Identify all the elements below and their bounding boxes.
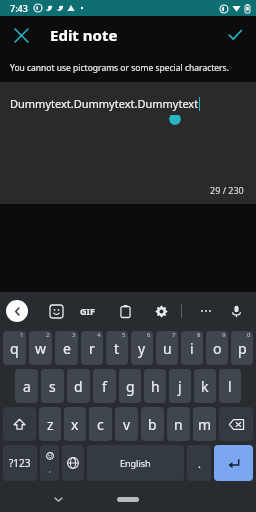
- button[interactable]: i: [181, 331, 203, 365]
- staticText: Dummytext.Dummytext.Dummytext: [10, 96, 199, 111]
- button[interactable]: k: [194, 369, 216, 403]
- button[interactable]: c: [89, 407, 112, 441]
- button[interactable]: y: [131, 331, 153, 365]
- button[interactable]: n: [167, 407, 190, 441]
- button[interactable]: Settings: [149, 299, 173, 323]
- staticText: l: [228, 377, 232, 396]
- button[interactable]: Hide keyboard: [48, 489, 68, 509]
- button[interactable]: q: [3, 331, 26, 365]
- staticText: 2: [46, 331, 50, 339]
- button[interactable]: r: [81, 331, 103, 365]
- button[interactable]: g: [119, 369, 141, 403]
- staticText: q: [10, 339, 19, 358]
- staticText: i: [190, 339, 194, 358]
- staticText: You cannot use pictograms or some specia…: [10, 62, 246, 74]
- button[interactable]: t: [106, 331, 128, 365]
- button[interactable]: Change language: [62, 445, 84, 481]
- button[interactable]: English: [87, 445, 184, 481]
- staticText: a: [23, 377, 31, 396]
- staticText: g: [126, 377, 135, 396]
- staticText: 7: [172, 331, 176, 339]
- button[interactable]: GIF: [80, 305, 95, 317]
- button[interactable]: m: [193, 407, 216, 441]
- button[interactable]: s: [41, 369, 64, 403]
- button[interactable]: z: [39, 407, 61, 441]
- staticText: r: [89, 339, 95, 358]
- button[interactable]: Back: [6, 300, 28, 322]
- staticText: 0: [247, 331, 251, 339]
- button[interactable]: u: [156, 331, 178, 365]
- staticText: j: [178, 377, 182, 396]
- staticText: 1: [20, 331, 24, 339]
- staticText: ,: [49, 465, 51, 475]
- staticText: e: [63, 339, 71, 358]
- button[interactable]: Emoji: [40, 445, 59, 481]
- button[interactable]: d: [67, 369, 90, 403]
- button[interactable]: e: [55, 331, 78, 365]
- button[interactable]: w: [29, 331, 52, 365]
- staticText: s: [49, 377, 56, 396]
- staticText: z: [47, 415, 54, 434]
- button[interactable]: Stickers: [44, 299, 68, 323]
- staticText: n: [174, 415, 183, 434]
- staticText: k: [201, 377, 209, 396]
- staticText: v: [123, 415, 131, 434]
- staticText: u: [163, 339, 172, 358]
- staticText: m: [198, 415, 212, 434]
- button[interactable]: More options: [194, 299, 218, 323]
- button[interactable]: h: [144, 369, 166, 403]
- button[interactable]: Enter: [214, 445, 253, 481]
- staticText: b: [148, 415, 157, 434]
- button[interactable]: ?123: [3, 445, 37, 481]
- button[interactable]: x: [64, 407, 86, 441]
- staticText: 3: [72, 331, 76, 339]
- staticText: 6: [147, 331, 151, 339]
- button[interactable]: Save: [222, 22, 248, 48]
- staticText: 5: [122, 331, 126, 339]
- button[interactable]: Home: [117, 497, 139, 502]
- staticText: y: [138, 339, 146, 358]
- staticText: 7:43: [10, 2, 28, 14]
- staticText: English: [120, 457, 151, 469]
- button[interactable]: Clipboard: [113, 299, 137, 323]
- button[interactable]: Backspace: [219, 407, 253, 441]
- staticText: ?123: [9, 456, 31, 470]
- staticText: 8: [197, 331, 201, 339]
- button[interactable]: v: [115, 407, 138, 441]
- staticText: x: [71, 415, 79, 434]
- button[interactable]: f: [93, 369, 116, 403]
- button[interactable]: l: [219, 369, 241, 403]
- staticText: c: [97, 415, 104, 434]
- button[interactable]: .: [187, 445, 211, 481]
- button[interactable]: b: [141, 407, 164, 441]
- staticText: h: [151, 377, 160, 396]
- staticText: f: [102, 377, 107, 396]
- staticText: t: [114, 339, 120, 358]
- button[interactable]: Close: [8, 22, 34, 48]
- button[interactable]: a: [15, 369, 38, 403]
- button[interactable]: o: [206, 331, 228, 365]
- staticText: 4: [97, 331, 101, 339]
- staticText: Edit note: [50, 25, 118, 45]
- staticText: 29 / 230: [210, 184, 244, 196]
- button[interactable]: Shift: [3, 407, 36, 441]
- staticText: .: [198, 456, 201, 471]
- staticText: w: [35, 339, 47, 358]
- staticText: p: [238, 339, 247, 358]
- button[interactable]: j: [169, 369, 191, 403]
- staticText: d: [74, 377, 83, 396]
- staticText: 9: [222, 331, 226, 339]
- staticText: o: [213, 339, 222, 358]
- button[interactable]: Voice input: [224, 299, 248, 323]
- button[interactable]: p: [231, 331, 253, 365]
